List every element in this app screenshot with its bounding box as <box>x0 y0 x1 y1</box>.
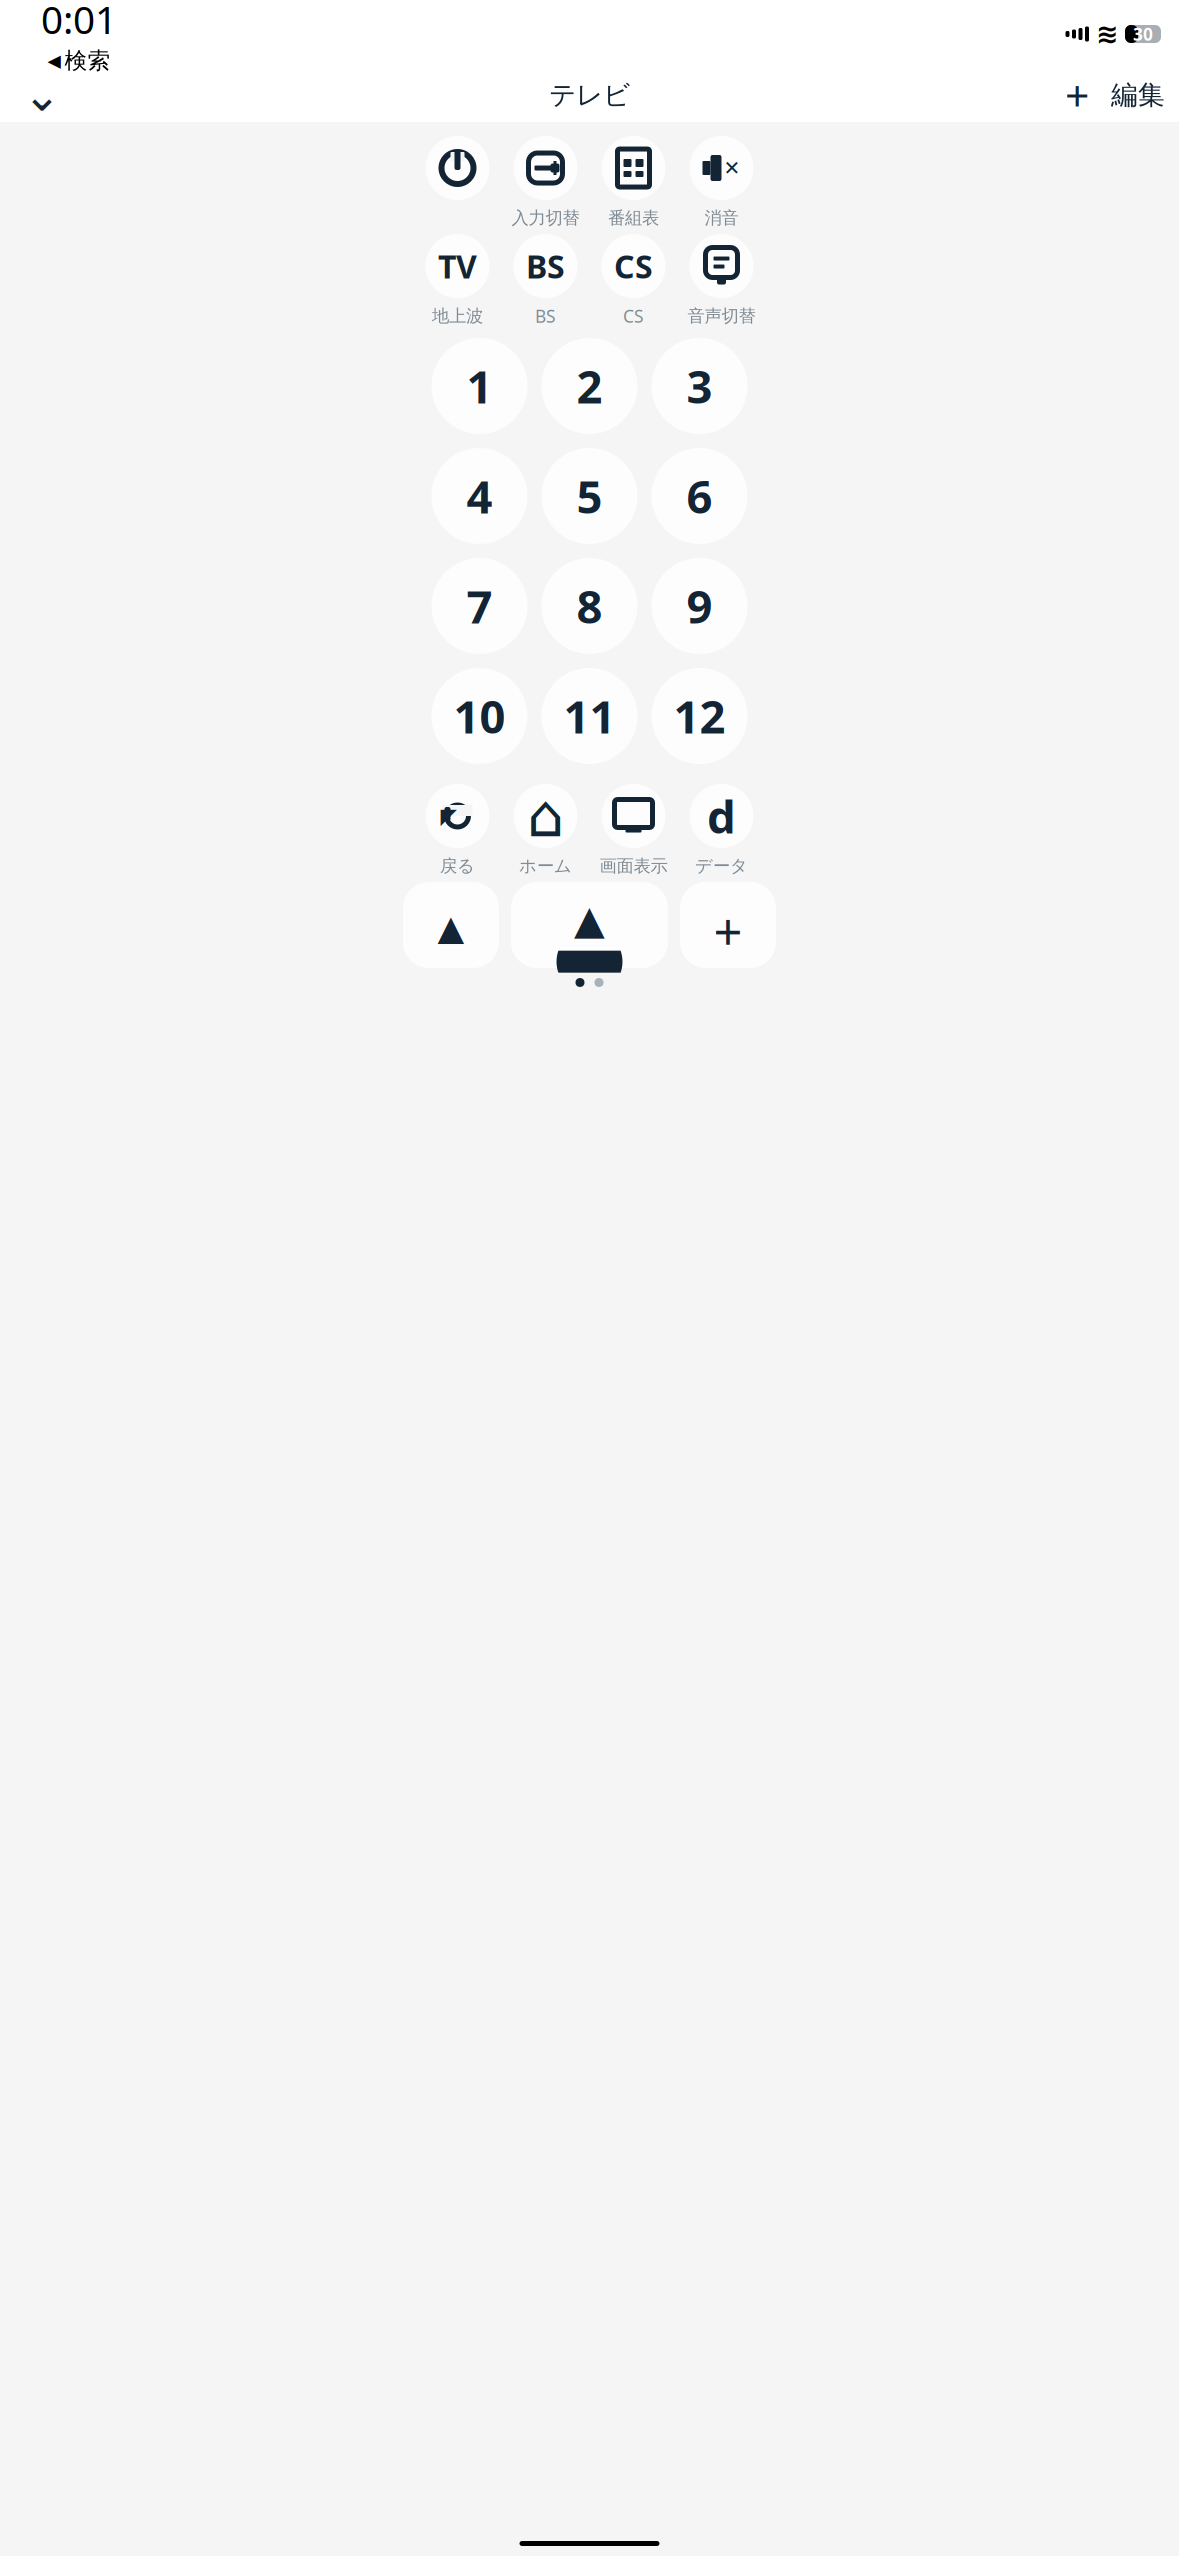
staticText: ▲ <box>574 897 605 943</box>
staticText: データ <box>695 855 748 877</box>
staticText: テレビ <box>549 79 630 111</box>
staticText: ▲ <box>437 908 464 947</box>
staticText: ✕ <box>723 157 740 179</box>
staticText: 7 <box>466 576 492 636</box>
staticText: 2 <box>576 356 602 416</box>
staticText: ◤ <box>440 804 456 828</box>
staticText: 戻る <box>440 855 475 877</box>
staticText: ホーム <box>519 855 572 877</box>
button[interactable]: 1 <box>431 338 527 434</box>
button[interactable]: 6 <box>651 448 747 544</box>
button[interactable]: 9 <box>651 558 747 654</box>
staticText: + <box>1065 67 1089 123</box>
button[interactable]: 入力切替 <box>501 136 589 226</box>
staticText: ⌄ <box>23 69 61 121</box>
button[interactable]: 7 <box>431 558 527 654</box>
button[interactable] <box>413 136 501 226</box>
staticText: ⌂ <box>527 783 564 849</box>
staticText: 音声切替 <box>687 305 755 327</box>
button[interactable]: 8 <box>541 558 637 654</box>
staticText: TV <box>438 245 477 287</box>
staticText: + <box>713 897 742 965</box>
staticText: 1 <box>466 356 492 416</box>
button[interactable]: 音量 上 <box>680 882 776 968</box>
staticText: 検索 <box>64 47 110 75</box>
staticText: 6 <box>686 466 712 526</box>
staticText: 5 <box>576 466 602 526</box>
staticText: 消音 <box>704 207 738 229</box>
staticText: ≋ <box>1096 19 1118 49</box>
button[interactable]: BS <box>501 234 589 324</box>
staticText: 画面表示 <box>599 855 667 877</box>
staticText: BS <box>535 304 556 327</box>
staticText: CS <box>623 304 644 327</box>
staticText: 9 <box>686 576 712 636</box>
button[interactable]: 編集 <box>1111 73 1165 117</box>
button[interactable]: 10 <box>431 668 527 764</box>
button[interactable]: d <box>677 784 765 874</box>
staticText: 11 <box>563 686 615 746</box>
button[interactable]: 画面表示 <box>589 784 677 874</box>
staticText: 番組表 <box>608 207 659 229</box>
staticText: BS <box>526 245 565 287</box>
button[interactable]: チャンネル 上 <box>403 882 499 968</box>
staticText: 4 <box>466 466 492 526</box>
button[interactable]: ◤ <box>413 784 501 874</box>
button[interactable]: 4 <box>431 448 527 544</box>
staticText: 12 <box>673 686 725 746</box>
button[interactable]: 方向 上 <box>511 882 668 968</box>
staticText: 編集 <box>1111 79 1165 111</box>
button[interactable]: 2 <box>541 338 637 434</box>
button[interactable]: 音声切替 <box>677 234 765 324</box>
button[interactable]: 3 <box>651 338 747 434</box>
button[interactable]: 5 <box>541 448 637 544</box>
button[interactable]: 12 <box>651 668 747 764</box>
button[interactable]: 閉じる <box>14 73 70 117</box>
staticText: 8 <box>576 576 602 636</box>
staticText: 10 <box>453 686 505 746</box>
staticText: 入力切替 <box>511 207 579 229</box>
button[interactable]: ✕ <box>677 136 765 226</box>
button[interactable]: ⌂ <box>501 784 589 874</box>
button[interactable]: TV <box>413 234 501 324</box>
staticText: d <box>707 786 736 846</box>
staticText: 地上波 <box>432 305 483 327</box>
staticText: 0:01 <box>41 0 117 45</box>
staticText: 3 <box>686 356 712 416</box>
button[interactable]: CS <box>589 234 677 324</box>
staticText: 30 <box>1133 22 1153 45</box>
button[interactable]: 11 <box>541 668 637 764</box>
button[interactable]: 番組表 <box>589 136 677 226</box>
staticText: CS <box>614 245 653 287</box>
staticText: ◀ <box>47 51 60 70</box>
button[interactable]: 追加 <box>1057 73 1097 117</box>
